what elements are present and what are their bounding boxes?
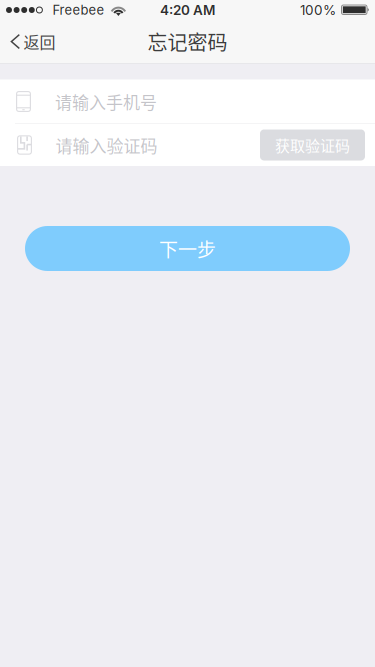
button[interactable]: 返回 xyxy=(0,20,63,63)
staticText: 返回 xyxy=(23,30,55,53)
staticText: 4:20 AM xyxy=(160,2,215,18)
staticText: 忘记密码 xyxy=(147,27,227,56)
staticText: Freebee xyxy=(52,2,104,18)
button[interactable]: 获取验证码 xyxy=(260,129,365,160)
staticText: 请输入验证码 xyxy=(55,133,157,157)
button[interactable]: 请输入手机号 xyxy=(0,79,375,123)
button[interactable]: 请输入验证码 xyxy=(0,124,260,166)
staticText: 100% xyxy=(300,2,336,18)
button[interactable]: 下一步 xyxy=(25,226,350,271)
staticText: 获取验证码 xyxy=(275,134,350,156)
staticText: 请输入手机号 xyxy=(55,89,157,114)
staticText: 下一步 xyxy=(159,235,216,262)
